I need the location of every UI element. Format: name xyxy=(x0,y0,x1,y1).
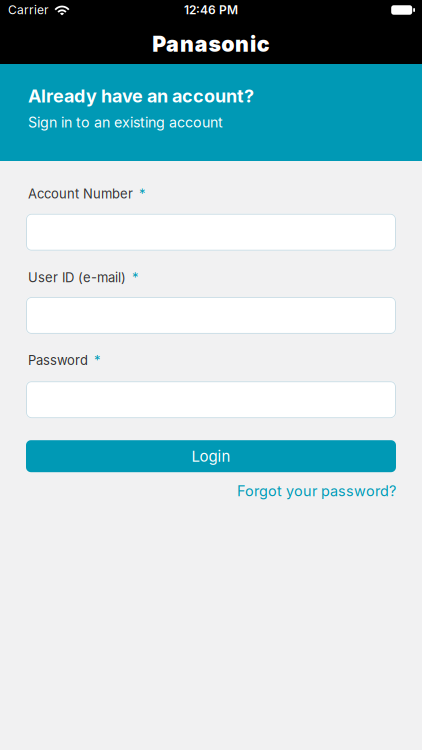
staticText: User ID (e-mail) xyxy=(28,270,126,285)
staticText: 12:46 PM xyxy=(184,3,238,17)
staticText: Already have an account? xyxy=(28,85,254,107)
staticText: * xyxy=(132,270,139,285)
button[interactable] xyxy=(26,214,396,251)
staticText: Password xyxy=(28,352,88,368)
staticText: * xyxy=(139,186,146,202)
staticText: Sign in to an existing account xyxy=(28,114,223,131)
button[interactable]: Forgot your password? xyxy=(237,482,396,500)
staticText: * xyxy=(94,352,101,368)
staticText: Carrier xyxy=(8,3,49,17)
button[interactable] xyxy=(26,381,396,418)
staticText: Panasonic xyxy=(152,31,270,57)
button[interactable] xyxy=(26,297,396,334)
button[interactable]: Login xyxy=(26,440,396,472)
staticText: Login xyxy=(191,447,230,465)
staticText: Account Number xyxy=(28,186,133,202)
staticText: Forgot your password? xyxy=(237,482,396,500)
